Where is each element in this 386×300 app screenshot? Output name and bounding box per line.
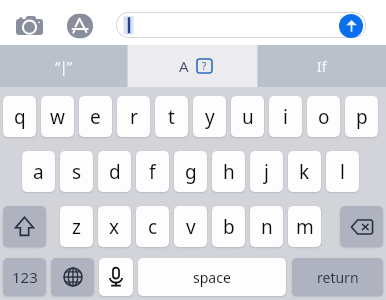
button[interactable]: return (292, 258, 383, 296)
staticText: j (264, 159, 269, 185)
button[interactable]: u (231, 96, 264, 137)
staticText: k (299, 159, 310, 185)
button[interactable]: Shift (3, 206, 46, 247)
button[interactable]: k (288, 151, 321, 192)
staticText: z (72, 214, 81, 240)
staticText: 123 (12, 267, 38, 287)
button[interactable]: “|” (0, 45, 127, 87)
button[interactable]: h (212, 151, 245, 192)
staticText: d (109, 159, 121, 185)
staticText: g (185, 159, 197, 185)
staticText: If (317, 57, 327, 76)
button[interactable]: j (250, 151, 283, 192)
button[interactable]: b (212, 206, 245, 247)
staticText: l (340, 159, 345, 185)
staticText: o (318, 104, 330, 130)
staticText: b (223, 214, 235, 240)
button[interactable]: q (3, 96, 36, 137)
button[interactable]: Dictation (99, 258, 133, 296)
button[interactable]: Camera (13, 9, 46, 42)
button[interactable]: m (288, 206, 321, 247)
button[interactable]: a (22, 151, 55, 192)
button[interactable]: space (138, 258, 286, 296)
button[interactable]: Backspace (340, 206, 383, 247)
button[interactable]: y (193, 96, 226, 137)
staticText: x (109, 214, 120, 240)
staticText: u (242, 104, 254, 130)
button[interactable]: o (307, 96, 340, 137)
staticText: n (261, 214, 273, 240)
staticText: space (193, 268, 231, 287)
staticText: m (296, 214, 314, 240)
staticText: r (130, 104, 138, 130)
staticText: a (33, 159, 44, 185)
button[interactable]: w (41, 96, 74, 137)
staticText: i (283, 104, 288, 130)
button[interactable]: l (326, 151, 359, 192)
button[interactable]: v (174, 206, 207, 247)
staticText: v (186, 214, 196, 240)
staticText: y (205, 104, 215, 130)
button[interactable]: d (98, 151, 131, 192)
button[interactable]: A (128, 45, 257, 87)
button[interactable]: n (250, 206, 283, 247)
staticText: f (149, 159, 156, 185)
staticText: return (317, 268, 359, 287)
button[interactable]: p (345, 96, 378, 137)
staticText: c (148, 214, 158, 240)
staticText: p (356, 104, 368, 130)
button[interactable]: c (136, 206, 169, 247)
button[interactable]: s (60, 151, 93, 192)
button[interactable]: f (136, 151, 169, 192)
button[interactable]: Send (339, 14, 363, 38)
button[interactable]: 123 (3, 258, 46, 296)
staticText: A (179, 56, 189, 76)
button[interactable]: i (269, 96, 302, 137)
button[interactable]: e (79, 96, 112, 137)
button[interactable]: z (60, 206, 93, 247)
staticText: w (50, 104, 65, 130)
button[interactable]: If (258, 45, 386, 87)
button[interactable]: r (117, 96, 150, 137)
staticText: e (90, 104, 101, 130)
button[interactable]: App Store (63, 9, 96, 42)
staticText: ? (202, 59, 207, 73)
button[interactable]: Switch keyboard (51, 258, 94, 296)
button[interactable]: t (155, 96, 188, 137)
staticText: s (72, 159, 82, 185)
staticText: h (223, 159, 235, 185)
staticText: “|” (55, 56, 72, 76)
staticText: t (168, 104, 175, 130)
button[interactable]: g (174, 151, 207, 192)
staticText: q (14, 104, 26, 130)
button[interactable]: x (98, 206, 131, 247)
button[interactable] (116, 12, 366, 38)
